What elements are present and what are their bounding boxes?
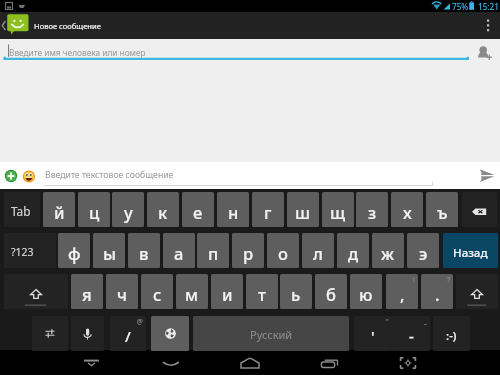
staticText: _	[424, 317, 427, 326]
button[interactable]: Emoji	[20, 163, 38, 188]
staticText: ж	[381, 242, 395, 264]
button[interactable]: о	[267, 233, 299, 268]
staticText: 75%	[452, 1, 469, 12]
button[interactable]: ц	[78, 192, 110, 227]
staticText: ?123	[11, 245, 34, 259]
button[interactable]: и	[211, 274, 243, 309]
button[interactable]: Screenshot	[388, 350, 430, 375]
button[interactable]: ?123	[4, 233, 56, 268]
button[interactable]: ч	[106, 274, 138, 309]
button[interactable]: Введите текстовое сообщение	[43, 162, 463, 189]
staticText: -	[409, 326, 414, 346]
staticText: Введите имя человека или номер	[9, 47, 146, 58]
button[interactable]	[151, 316, 189, 351]
button[interactable]	[32, 316, 68, 351]
button[interactable]: я	[71, 274, 103, 309]
button[interactable]: у	[112, 192, 144, 227]
button[interactable]: л	[302, 233, 334, 268]
staticText: я	[82, 283, 92, 305]
button[interactable]: Tab	[4, 192, 40, 227]
button[interactable]: Recent apps	[309, 350, 351, 375]
button[interactable]: г	[252, 192, 284, 227]
button[interactable]	[456, 274, 498, 309]
staticText: т	[258, 283, 266, 305]
button[interactable]: к	[147, 192, 179, 227]
staticText: ы	[103, 242, 116, 264]
button[interactable]	[71, 316, 104, 351]
button[interactable]: н	[217, 192, 249, 227]
button[interactable]: '	[354, 316, 392, 351]
staticText: э	[419, 242, 428, 264]
button[interactable]: -	[392, 316, 430, 351]
staticText: ь	[291, 283, 301, 305]
button[interactable]: р	[232, 233, 264, 268]
staticText: л	[313, 242, 323, 264]
button[interactable]: а	[163, 233, 195, 268]
staticText: Русский	[250, 327, 293, 342]
staticText: о	[278, 242, 288, 264]
staticText: н	[228, 201, 239, 223]
staticText: ъ	[437, 201, 448, 223]
button[interactable]	[4, 274, 68, 309]
button[interactable]: :-)	[433, 316, 470, 351]
button[interactable]: ю	[350, 274, 382, 309]
button[interactable]: э	[407, 233, 439, 268]
button[interactable]: ,	[386, 274, 418, 309]
button[interactable]: д	[337, 233, 369, 268]
button[interactable]: в	[128, 233, 160, 268]
staticText: и	[222, 283, 233, 305]
staticText: /	[125, 326, 131, 346]
button[interactable]: ш	[287, 192, 319, 227]
staticText: Новое сообщение	[34, 21, 101, 31]
staticText: '	[371, 326, 375, 346]
button[interactable]: ы	[93, 233, 125, 268]
staticText: ц	[89, 201, 100, 223]
button[interactable]: /	[110, 316, 146, 351]
button[interactable]: т	[246, 274, 278, 309]
button[interactable]: ь	[280, 274, 312, 309]
button[interactable]: Введите имя человека или номер	[0, 39, 462, 61]
button[interactable]: Send	[474, 162, 498, 189]
staticText: Введите текстовое сообщение	[45, 169, 174, 181]
button[interactable]: ъ	[426, 192, 458, 227]
button[interactable]: Back	[148, 350, 190, 375]
staticText: !	[413, 275, 415, 284]
button[interactable]: з	[356, 192, 388, 227]
button[interactable]	[462, 192, 497, 227]
button[interactable]: Home	[231, 350, 273, 375]
staticText: ш	[295, 201, 311, 223]
button[interactable]: Attach	[2, 163, 20, 188]
button[interactable]: Назад	[443, 233, 498, 268]
staticText: в	[139, 242, 149, 264]
button[interactable]: ж	[372, 233, 404, 268]
staticText: ю	[359, 283, 373, 305]
staticText: @	[137, 317, 143, 326]
button[interactable]: й	[43, 192, 75, 227]
staticText: а	[174, 242, 184, 264]
button[interactable]: Hide keyboard	[70, 350, 112, 375]
button[interactable]: щ	[322, 192, 354, 227]
button[interactable]: е	[182, 192, 214, 227]
staticText: к	[158, 201, 168, 223]
staticText: р	[243, 242, 254, 264]
button[interactable]: с	[141, 274, 173, 309]
button[interactable]: Русский	[193, 316, 349, 351]
staticText: х	[403, 201, 412, 223]
staticText: ,	[400, 283, 405, 305]
button[interactable]: б	[315, 274, 347, 309]
staticText: ?	[447, 275, 450, 284]
staticText: ф	[68, 242, 81, 264]
button[interactable]: Add person	[472, 39, 498, 63]
staticText: Tab	[11, 203, 31, 219]
button[interactable]: Back	[0, 12, 33, 39]
staticText: 15:21	[478, 1, 499, 12]
button[interactable]: ф	[58, 233, 90, 268]
staticText: й	[54, 201, 65, 223]
button[interactable]: More options	[476, 12, 500, 39]
staticText: :-)	[446, 328, 457, 344]
staticText: "	[386, 317, 389, 326]
button[interactable]: х	[391, 192, 423, 227]
button[interactable]: м	[176, 274, 208, 309]
button[interactable]: п	[197, 233, 229, 268]
button[interactable]: .	[421, 274, 453, 309]
